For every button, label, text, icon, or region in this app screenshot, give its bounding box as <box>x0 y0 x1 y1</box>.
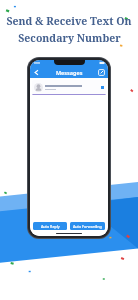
button[interactable]: Auto Forwarding <box>70 222 105 230</box>
staticText: Auto Forwarding <box>73 224 102 229</box>
button[interactable]: Compose message <box>97 68 106 77</box>
staticText: Send & Receive Text On <box>6 14 132 28</box>
staticText: Messages <box>56 69 83 76</box>
staticText: Secondary Number <box>18 31 121 45</box>
button[interactable] <box>32 80 106 95</box>
button[interactable]: Auto Reply <box>33 222 67 230</box>
button[interactable]: Back <box>32 68 41 77</box>
staticText: Auto Reply <box>41 224 60 229</box>
